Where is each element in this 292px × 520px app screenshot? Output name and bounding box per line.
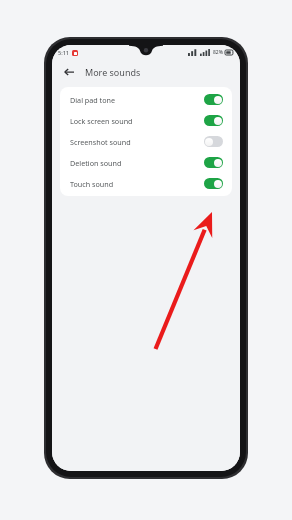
- button[interactable]: Back: [60, 63, 78, 81]
- staticText: 82%: [213, 49, 223, 56]
- button[interactable]: Lock screen sound: [60, 110, 232, 131]
- button[interactable]: Touch sound: [60, 173, 232, 194]
- staticText: 5:11: [58, 49, 69, 56]
- button[interactable]: On: [204, 178, 223, 189]
- staticText: Touch sound: [70, 179, 114, 189]
- staticText: Dial pad tone: [70, 95, 116, 105]
- button[interactable]: Off: [204, 136, 223, 147]
- button[interactable]: Dial pad tone: [60, 89, 232, 110]
- staticText: Deletion sound: [70, 158, 122, 168]
- staticText: Screenshot sound: [70, 137, 131, 147]
- button[interactable]: On: [204, 115, 223, 126]
- button[interactable]: On: [204, 94, 223, 105]
- button[interactable]: On: [204, 157, 223, 168]
- button[interactable]: Deletion sound: [60, 152, 232, 173]
- staticText: More sounds: [85, 66, 141, 78]
- button[interactable]: Screenshot sound: [60, 131, 232, 152]
- staticText: Lock screen sound: [70, 116, 133, 126]
